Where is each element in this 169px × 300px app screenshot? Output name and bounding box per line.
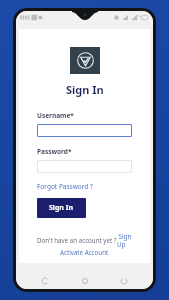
button[interactable]: Back: [34, 273, 56, 288]
staticText: Sign In: [66, 82, 104, 97]
staticText: Password*: [37, 147, 72, 156]
staticText: Username*: [37, 111, 74, 120]
button[interactable]: Home: [74, 273, 96, 288]
button[interactable]: Activate Account: [60, 248, 109, 256]
staticText: Don't have an account yet ?: [37, 236, 117, 244]
staticText: Sign In: [49, 203, 74, 213]
button[interactable]: Sign Up: [117, 232, 132, 248]
staticText: Sign Up: [117, 232, 132, 248]
button[interactable]: Sign In: [37, 198, 86, 218]
button[interactable]: Recent apps: [113, 273, 135, 288]
button[interactable]: Forgot Password ?: [37, 182, 93, 191]
button[interactable]: [37, 124, 132, 137]
staticText: Activate Account: [60, 248, 109, 256]
staticText: Forgot Password ?: [37, 182, 93, 191]
button[interactable]: [37, 160, 132, 173]
